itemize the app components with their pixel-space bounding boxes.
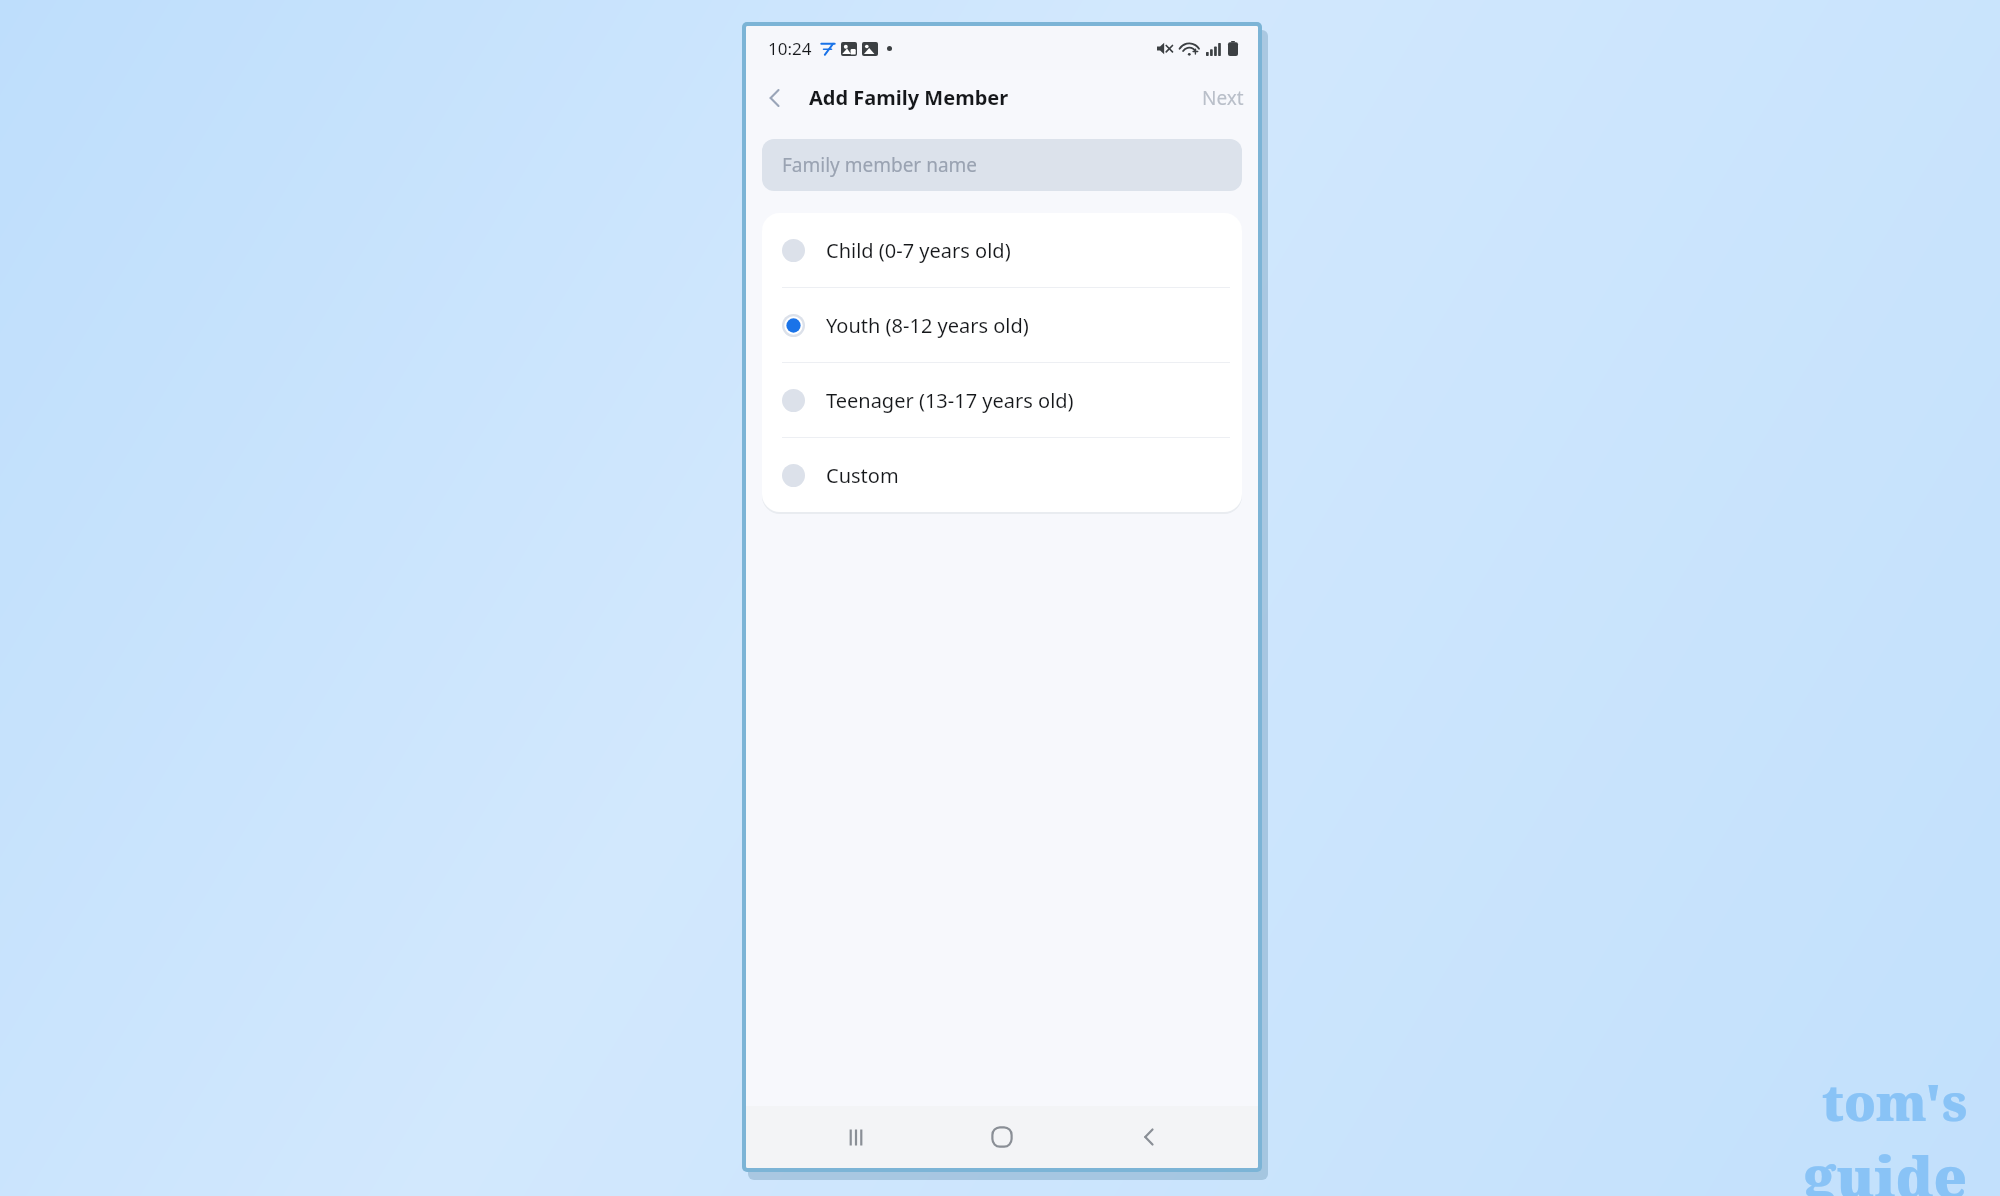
- staticText: tom's: [1821, 1068, 1967, 1136]
- button[interactable]: Youth (8-12 years old): [762, 288, 1242, 362]
- staticText: Child (0-7 years old): [826, 237, 1011, 264]
- staticText: guide: [1803, 1138, 1967, 1196]
- button[interactable]: Back: [1112, 1109, 1186, 1165]
- button[interactable]: Teenager (13-17 years old): [762, 363, 1242, 437]
- button[interactable]: Back: [754, 77, 796, 119]
- staticText: Youth (8-12 years old): [826, 312, 1029, 339]
- staticText: 10:24: [768, 37, 812, 60]
- button[interactable]: Recent apps: [819, 1109, 893, 1165]
- button[interactable]: Home: [965, 1109, 1039, 1165]
- button[interactable]: Custom: [762, 438, 1242, 512]
- staticText: Family member name: [782, 152, 978, 178]
- staticText: Custom: [826, 462, 899, 489]
- staticText: Teenager (13-17 years old): [826, 387, 1074, 414]
- button[interactable]: Family member name: [762, 139, 1242, 191]
- staticText: Next: [1202, 85, 1244, 111]
- staticText: Add Family Member: [809, 84, 1009, 111]
- button[interactable]: Next: [1188, 79, 1258, 117]
- button[interactable]: Child (0-7 years old): [762, 213, 1242, 287]
